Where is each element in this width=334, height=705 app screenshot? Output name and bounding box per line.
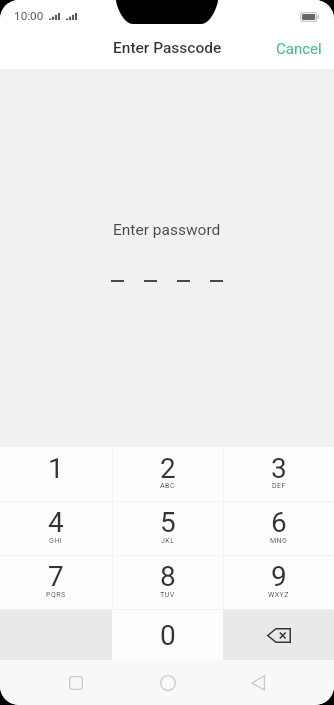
staticText: 4 — [48, 506, 64, 539]
staticText: 8 — [160, 560, 176, 593]
button[interactable]: 2 — [112, 447, 223, 501]
staticText: 2 — [160, 452, 176, 485]
button[interactable]: Delete — [223, 610, 334, 660]
staticText: 7 — [48, 560, 64, 593]
staticText: ABC — [160, 482, 175, 490]
button[interactable]: 1 — [0, 447, 112, 501]
button[interactable]: 4 — [0, 502, 112, 555]
button[interactable]: Cancel — [264, 32, 334, 66]
button[interactable]: 3 — [223, 447, 334, 501]
button[interactable]: 8 — [112, 556, 223, 609]
button[interactable]: Recents — [30, 660, 122, 705]
button[interactable]: 7 — [0, 556, 112, 609]
button[interactable]: 0 — [112, 610, 223, 660]
staticText: WXYZ — [268, 591, 289, 599]
staticText: MNO — [270, 537, 288, 545]
button[interactable]: Home — [122, 660, 213, 705]
staticText: PQRS — [46, 591, 66, 599]
staticText: 9 — [271, 560, 287, 593]
staticText: 1 — [48, 452, 64, 485]
staticText: 0 — [160, 619, 176, 652]
staticText: 5 — [160, 506, 176, 539]
staticText: GHI — [49, 537, 63, 545]
button[interactable]: 6 — [223, 502, 334, 555]
button[interactable]: 9 — [223, 556, 334, 609]
staticText: Enter password — [113, 221, 221, 239]
staticText: 6 — [271, 506, 287, 539]
staticText: DEF — [272, 482, 286, 490]
staticText: JKL — [161, 537, 175, 545]
staticText: 10:00 — [14, 9, 44, 23]
staticText: TUV — [160, 591, 175, 599]
button[interactable]: Back — [213, 660, 304, 705]
button[interactable]: 5 — [112, 502, 223, 555]
staticText: Cancel — [276, 40, 322, 58]
staticText: Enter Passcode — [113, 39, 222, 57]
staticText: 3 — [271, 452, 287, 485]
